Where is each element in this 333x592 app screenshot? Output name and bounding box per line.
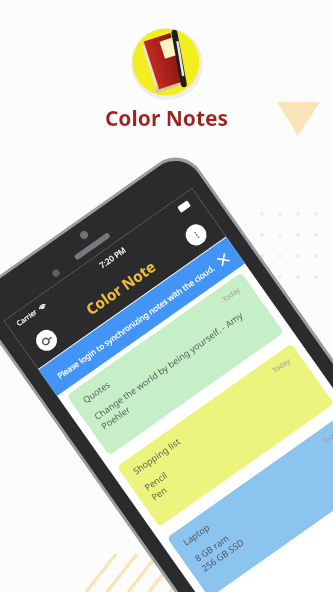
- button[interactable]: Please login to synchronizing notes with…: [39, 237, 245, 396]
- staticText: Shopping list: [130, 435, 182, 476]
- staticText: Color Note: [82, 256, 159, 319]
- button[interactable]: Dismiss: [216, 252, 231, 267]
- button[interactable]: Laptop: [167, 414, 333, 592]
- button[interactable]: Shopping list: [117, 343, 333, 527]
- staticText: Pen: [149, 483, 169, 503]
- staticText: Today: [221, 285, 243, 305]
- staticText: Change the world by being yourself. - Am…: [92, 309, 245, 422]
- button[interactable]: Search: [32, 326, 61, 355]
- staticText: Pencil: [142, 468, 170, 493]
- button[interactable]: More options: [181, 220, 211, 249]
- staticText: Color Notes: [83, 104, 250, 133]
- staticText: Carrier: [15, 307, 39, 329]
- staticText: Quotes: [80, 378, 112, 405]
- button[interactable]: Quotes: [66, 272, 284, 456]
- staticText: Poehler: [98, 403, 132, 432]
- staticText: Please login to synchronizing notes with…: [55, 262, 216, 381]
- staticText: Today: [321, 427, 333, 447]
- staticText: 256 GB SSD: [199, 536, 246, 574]
- staticText: Today: [271, 356, 293, 376]
- staticText: Laptop: [180, 520, 212, 548]
- staticText: 8 GB ram: [192, 531, 231, 564]
- staticText: 7:20 PM: [97, 244, 128, 270]
